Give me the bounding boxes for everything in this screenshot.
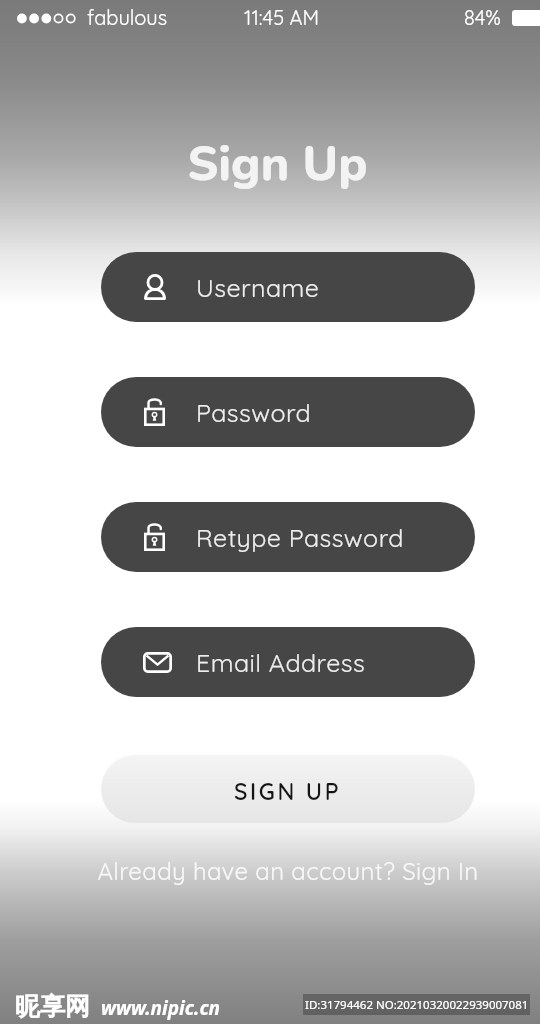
staticText: Email Address	[196, 647, 366, 678]
staticText: 昵享网	[15, 991, 90, 1022]
staticText: Sign Up	[187, 131, 368, 196]
other: Password	[144, 398, 165, 426]
staticText: Password	[196, 397, 312, 428]
button[interactable]: Username	[101, 252, 475, 322]
other: Email Address	[143, 652, 172, 673]
button[interactable]: SIGN UP	[101, 755, 475, 823]
other: Username	[144, 274, 166, 300]
button[interactable]: Email Address	[101, 627, 475, 697]
button[interactable]: Password	[101, 377, 475, 447]
staticText: 84%	[464, 5, 501, 30]
staticText: Username	[196, 272, 320, 303]
staticText: ID:31794462 NO:20210320022939007081	[305, 997, 529, 1013]
staticText: fabulous	[87, 5, 168, 30]
staticText: 11:45 AM	[244, 5, 320, 30]
staticText: Retype Password	[196, 522, 404, 553]
staticText: www.nipic.cn	[101, 995, 221, 1021]
button[interactable]: Already have an account? Sign In	[97, 856, 479, 886]
staticText: SIGN UP	[234, 777, 342, 806]
other: Password	[144, 523, 165, 551]
button[interactable]: Password	[101, 502, 475, 572]
